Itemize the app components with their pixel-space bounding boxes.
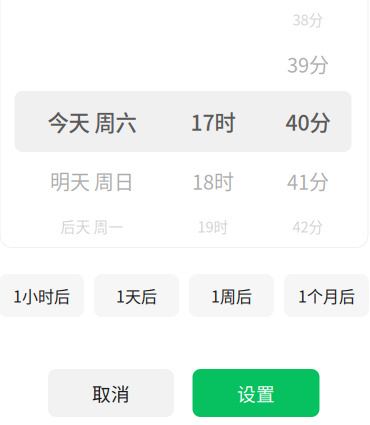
staticText: 40分 [285,106,330,137]
button[interactable]: 设置 [192,369,319,417]
staticText: 18时 [192,166,234,195]
staticText: 19时 [197,215,228,237]
staticText: 取消 [92,379,130,406]
staticText: 设置 [237,379,275,406]
staticText: 39分 [287,49,329,78]
staticText: 41分 [287,166,329,195]
staticText: 17时 [190,106,235,137]
staticText: 38分 [292,8,323,30]
staticText: 42分 [292,215,323,237]
staticText: 1天后 [116,284,157,307]
button[interactable]: 1小时后 [0,274,84,317]
staticText: 明天 周日 [50,166,134,195]
staticText: 1个月后 [298,284,355,307]
staticText: 1周后 [211,284,252,307]
button[interactable]: 1个月后 [284,274,369,317]
staticText: 1小时后 [13,284,70,307]
button[interactable]: 1周后 [189,274,274,317]
button[interactable]: 1天后 [94,274,179,317]
staticText: 今天 周六 [47,106,136,137]
button[interactable]: 取消 [48,369,174,417]
staticText: 后天 周一 [60,215,123,237]
